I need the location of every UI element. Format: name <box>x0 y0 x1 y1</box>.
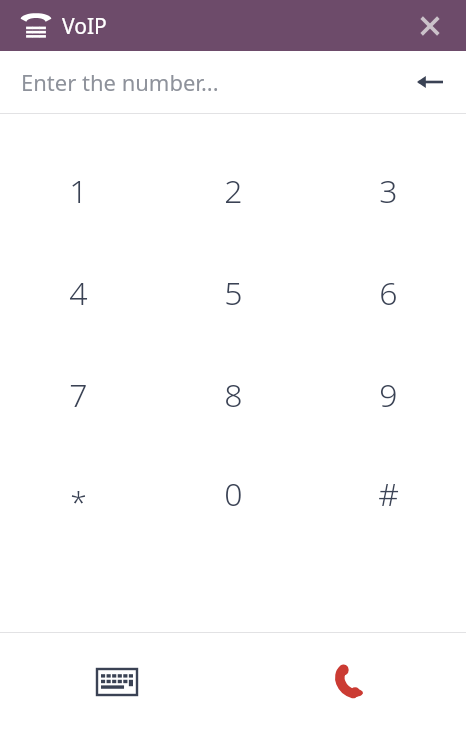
staticText: VoIP <box>62 12 107 41</box>
staticText: * <box>70 481 87 522</box>
button[interactable]: 4 <box>0 242 156 344</box>
button[interactable]: 2 <box>156 140 311 242</box>
staticText: 6 <box>379 271 398 315</box>
other: Dial pad <box>20 11 52 41</box>
button[interactable]: 1 <box>0 140 156 242</box>
button[interactable]: 5 <box>156 242 311 344</box>
staticText: 0 <box>224 472 243 516</box>
button[interactable]: # <box>311 446 466 542</box>
staticText: 9 <box>379 373 398 417</box>
button[interactable]: Call <box>233 633 466 731</box>
staticText: 2 <box>224 169 243 213</box>
button[interactable]: 0 <box>156 446 311 542</box>
staticText: # <box>378 472 399 516</box>
staticText: 5 <box>224 271 243 315</box>
staticText: 8 <box>224 373 243 417</box>
button[interactable]: Enter the number... <box>0 51 466 113</box>
staticText: 7 <box>69 373 88 417</box>
staticText: Enter the number... <box>21 67 219 97</box>
staticText: 3 <box>379 169 398 213</box>
button[interactable]: 7 <box>0 344 156 446</box>
button[interactable]: Close <box>408 4 452 48</box>
button[interactable]: 8 <box>156 344 311 446</box>
button[interactable]: 9 <box>311 344 466 446</box>
button[interactable]: Keyboard <box>0 633 233 731</box>
button[interactable]: * <box>0 446 156 542</box>
button[interactable]: Backspace <box>406 58 454 106</box>
button[interactable]: 3 <box>311 140 466 242</box>
staticText: 1 <box>69 169 88 213</box>
staticText: 4 <box>69 271 88 315</box>
button[interactable]: 6 <box>311 242 466 344</box>
